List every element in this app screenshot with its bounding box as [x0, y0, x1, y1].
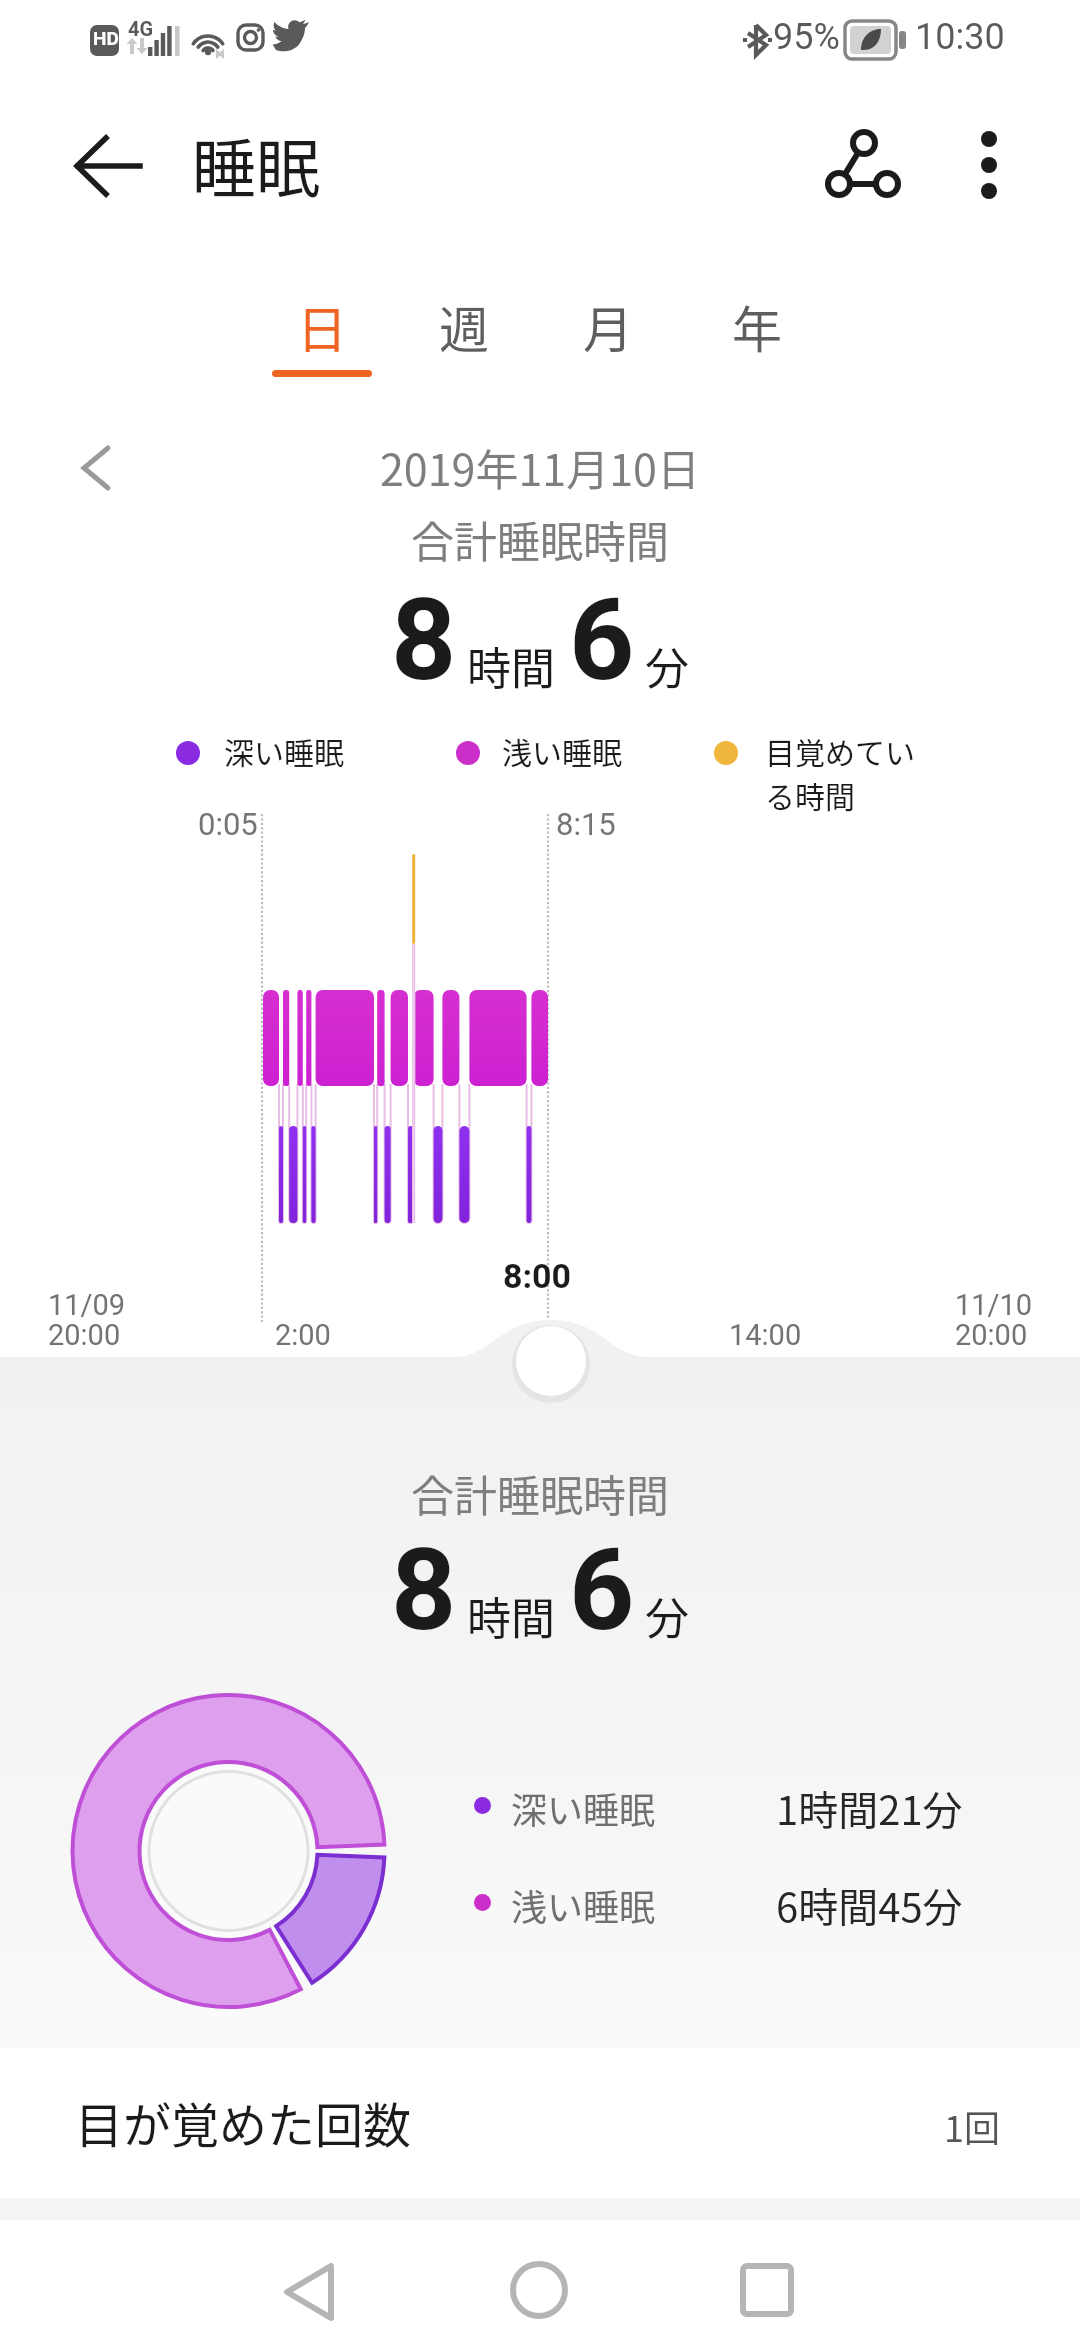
button[interactable]: Back [249, 2232, 369, 2340]
staticText: 年 [732, 290, 782, 362]
staticText: 10:30 [915, 16, 1005, 58]
staticText: 1時間21分 [776, 1779, 963, 1837]
staticText: 目が覚めた回数 [75, 2087, 412, 2157]
staticText: 1回 [944, 2100, 1000, 2152]
staticText: 合計睡眠時間 [411, 508, 669, 570]
staticText: 8 [391, 1523, 457, 1657]
staticText: 0:05 [198, 806, 258, 842]
staticText: 週 [439, 290, 489, 362]
button[interactable]: 年 [697, 290, 817, 390]
button[interactable]: Share [798, 110, 914, 226]
staticText: 95% [773, 16, 840, 58]
button[interactable]: 月 [548, 290, 668, 390]
staticText: 時間 [467, 634, 555, 698]
staticText: 11/09 20:00 [48, 1288, 126, 1352]
staticText: 2019年11月10日 [380, 436, 700, 498]
staticText: 時間 [467, 1584, 555, 1648]
staticText: 日 [297, 290, 347, 362]
staticText: 2:00 [275, 1318, 331, 1352]
staticText: 8 [391, 573, 457, 707]
staticText: 月 [583, 290, 633, 362]
staticText: 分 [645, 1584, 689, 1648]
staticText: 14:00 [729, 1318, 802, 1352]
button[interactable]: 日 [262, 290, 382, 390]
button[interactable]: 目が覚めた回数 [0, 2048, 1080, 2198]
staticText: 浅い睡眠 [511, 1879, 656, 1931]
staticText: 6 [569, 1523, 635, 1657]
staticText: 6時間45分 [776, 1876, 963, 1934]
staticText: 目覚めてい る時間 [765, 729, 915, 817]
staticText: 睡眠 [192, 118, 320, 211]
staticText: 合計睡眠時間 [411, 1462, 669, 1524]
staticText: HD [93, 27, 119, 49]
staticText: 4G [128, 17, 154, 40]
button[interactable]: 週 [404, 290, 524, 390]
button[interactable]: More options [938, 110, 1048, 220]
button[interactable]: Home [479, 2232, 599, 2340]
staticText: 分 [645, 634, 689, 698]
staticText: 深い睡眠 [511, 1782, 656, 1834]
staticText: 深い睡眠 [224, 729, 344, 772]
staticText: 8:15 [556, 806, 616, 842]
button[interactable]: Back [48, 108, 164, 224]
staticText: 浅い睡眠 [502, 729, 622, 772]
button[interactable]: Previous day [58, 428, 138, 508]
staticText: 11/10 20:00 [955, 1288, 1033, 1352]
staticText: 6 [569, 573, 635, 707]
button[interactable]: Recent apps [707, 2232, 827, 2340]
staticText: 8:00 [503, 1256, 572, 1296]
